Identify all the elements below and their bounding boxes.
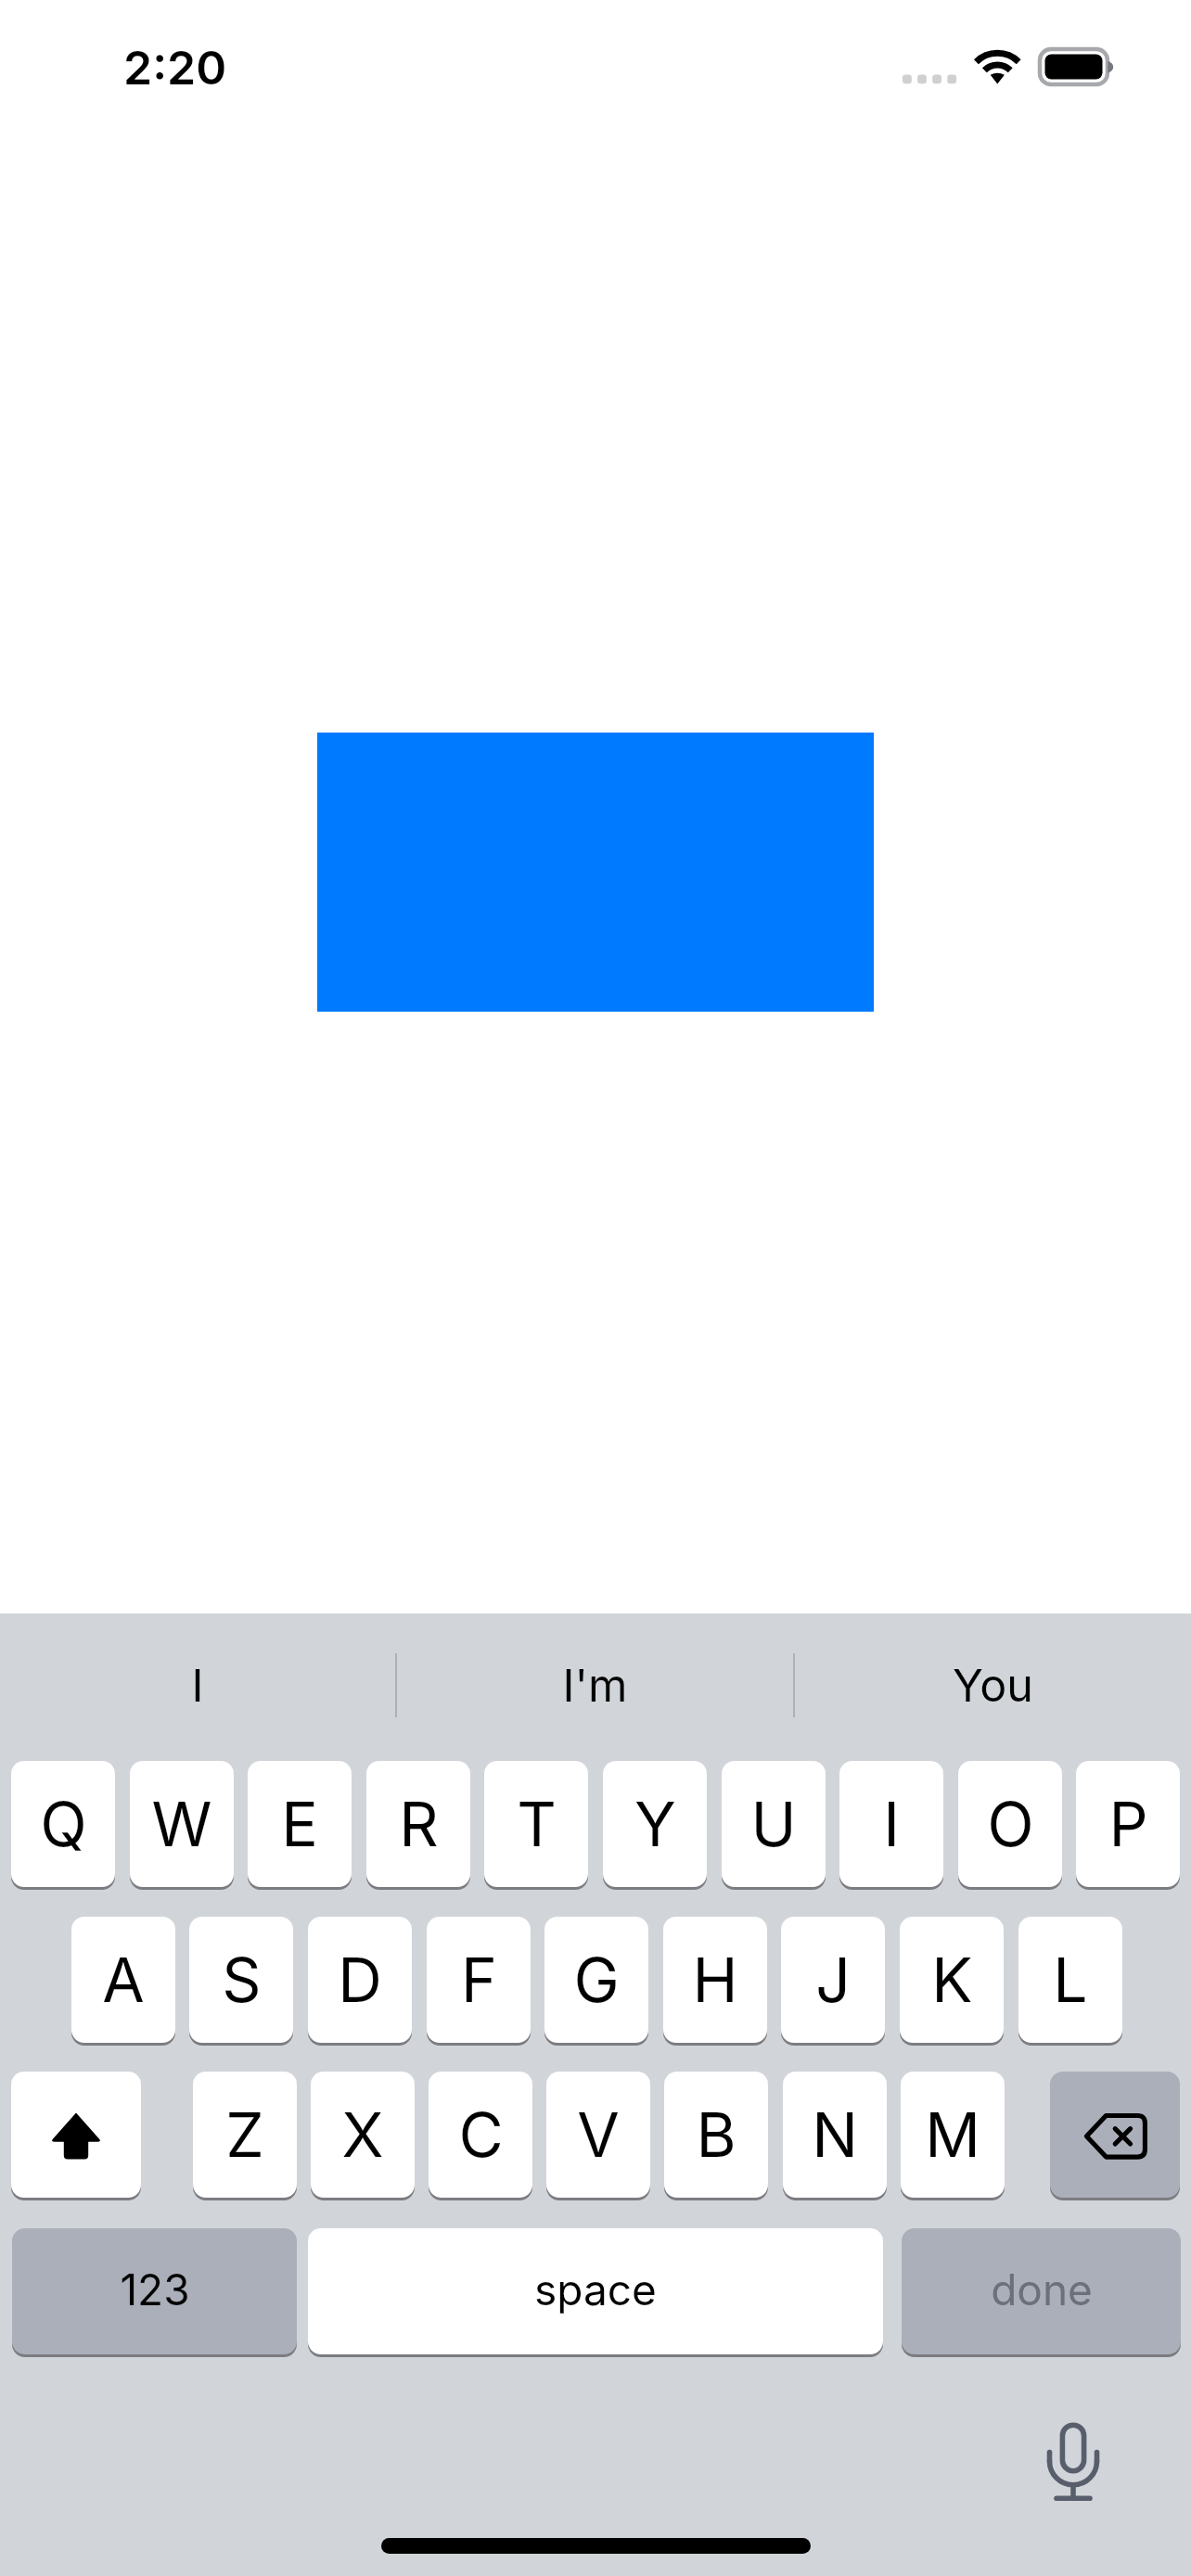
button[interactable]: U <box>722 1761 826 1887</box>
button[interactable]: Backspace <box>1050 2072 1180 2198</box>
button[interactable]: Z <box>193 2072 297 2198</box>
button[interactable]: P <box>1076 1761 1180 1887</box>
staticText: I <box>883 1787 900 1861</box>
button[interactable]: 123 <box>12 2228 297 2354</box>
button[interactable]: E <box>248 1761 352 1887</box>
button[interactable]: L <box>1018 1917 1122 2043</box>
button[interactable]: F <box>427 1917 531 2043</box>
button[interactable]: K <box>900 1917 1004 2043</box>
staticText: T <box>517 1787 557 1861</box>
staticText: space <box>534 2264 657 2315</box>
button[interactable]: M <box>901 2072 1005 2198</box>
staticText: N <box>812 2098 858 2172</box>
button[interactable]: W <box>130 1761 234 1887</box>
staticText: Q <box>40 1787 87 1861</box>
staticText: Z <box>225 2098 264 2172</box>
staticText: X <box>341 2098 384 2172</box>
staticText: F <box>461 1943 497 2017</box>
button[interactable]: Shift <box>11 2072 141 2198</box>
button[interactable]: I <box>0 1613 395 1757</box>
staticText: You <box>953 1658 1033 1713</box>
staticText: O <box>987 1787 1034 1861</box>
button[interactable]: You <box>795 1613 1191 1757</box>
button[interactable]: V <box>546 2072 650 2198</box>
button[interactable]: S <box>189 1917 293 2043</box>
button[interactable]: C <box>429 2072 532 2198</box>
staticText: R <box>399 1787 439 1861</box>
button[interactable]: H <box>663 1917 767 2043</box>
staticText: D <box>338 1943 382 2017</box>
staticText: W <box>151 1787 212 1861</box>
staticText: S <box>222 1943 262 2017</box>
staticText: Y <box>634 1787 676 1861</box>
staticText: done <box>991 2264 1093 2315</box>
button[interactable]: Y <box>603 1761 707 1887</box>
staticText: I <box>191 1658 204 1713</box>
button[interactable]: A <box>71 1917 175 2043</box>
staticText: L <box>1053 1943 1088 2017</box>
staticText: G <box>573 1943 620 2017</box>
button[interactable]: I <box>839 1761 943 1887</box>
staticText: V <box>577 2098 620 2172</box>
staticText: U <box>750 1787 797 1861</box>
staticText: M <box>925 2098 980 2172</box>
staticText: K <box>931 1943 973 2017</box>
staticText: P <box>1108 1787 1148 1861</box>
button[interactable]: space <box>308 2228 883 2354</box>
button[interactable]: D <box>308 1917 412 2043</box>
staticText: E <box>281 1787 318 1861</box>
button[interactable]: I'm <box>397 1613 793 1757</box>
button[interactable]: N <box>783 2072 887 2198</box>
staticText: I'm <box>562 1658 628 1713</box>
button[interactable]: J <box>781 1917 885 2043</box>
button[interactable]: X <box>311 2072 415 2198</box>
button[interactable]: done <box>902 2228 1181 2354</box>
staticText: 123 <box>120 2264 190 2315</box>
staticText: A <box>102 1943 145 2017</box>
button[interactable]: G <box>544 1917 648 2043</box>
staticText: C <box>458 2098 504 2172</box>
staticText: H <box>692 1943 738 2017</box>
button[interactable]: T <box>484 1761 588 1887</box>
button[interactable]: R <box>366 1761 470 1887</box>
button[interactable]: B <box>664 2072 768 2198</box>
button[interactable]: Q <box>11 1761 115 1887</box>
button[interactable]: O <box>958 1761 1062 1887</box>
button[interactable]: Dictate <box>1027 2418 1120 2511</box>
staticText: 2:20 <box>123 40 227 96</box>
staticText: J <box>815 1943 851 2017</box>
staticText: B <box>696 2098 736 2172</box>
